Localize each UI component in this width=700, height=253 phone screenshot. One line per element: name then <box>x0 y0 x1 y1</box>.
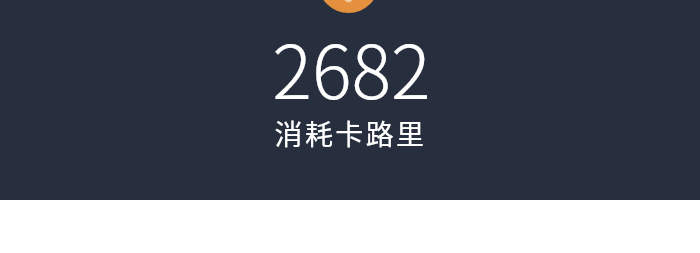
button[interactable]: 2682 <box>272 13 431 120</box>
button[interactable]: Calories burned <box>0 0 700 200</box>
staticText: 2682 <box>272 13 431 120</box>
staticText: 消耗卡路里 <box>274 113 427 154</box>
button[interactable]: Calories burned <box>318 0 379 13</box>
